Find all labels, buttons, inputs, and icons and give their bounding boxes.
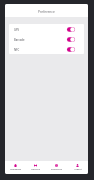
- staticText: GPS: [14, 28, 20, 32]
- button[interactable]: Homepage: [5, 161, 25, 174]
- button[interactable]: Barcode: [9, 34, 84, 44]
- staticText: Homepage: [10, 168, 21, 171]
- button[interactable]: Toggle: [67, 27, 75, 32]
- button[interactable]: Logout: [67, 161, 88, 174]
- staticText: Logout: [74, 168, 82, 171]
- staticText: NFC: [14, 48, 20, 52]
- button[interactable]: Toggle: [67, 47, 75, 52]
- button[interactable]: Preference: [46, 161, 67, 174]
- staticText: Preference: [38, 9, 55, 13]
- button[interactable]: Toggle: [67, 37, 75, 42]
- button[interactable]: GPS: [9, 24, 84, 34]
- staticText: Barcode: [14, 38, 25, 42]
- button[interactable]: NFC: [9, 44, 84, 54]
- staticText: Preference: [51, 168, 62, 171]
- button[interactable]: Treasure: [25, 161, 46, 174]
- staticText: Treasure: [31, 168, 40, 171]
